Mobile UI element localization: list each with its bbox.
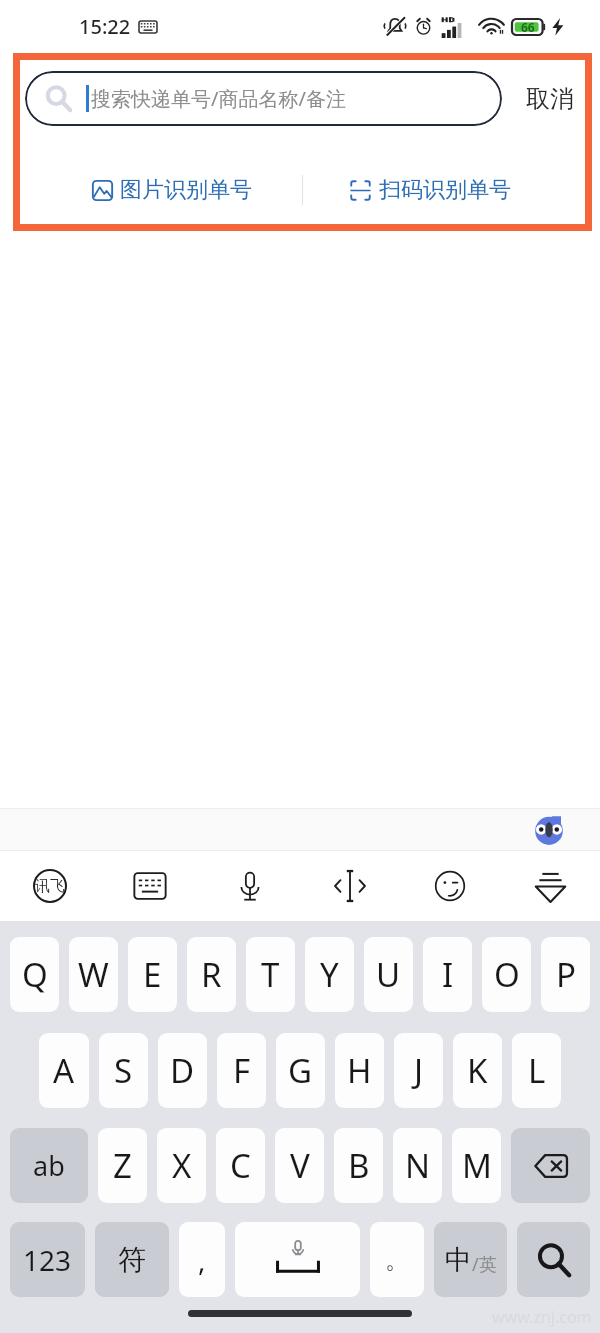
button[interactable]: C bbox=[216, 1128, 265, 1203]
staticText: 。 bbox=[385, 1245, 409, 1275]
staticText: 123 bbox=[23, 1241, 72, 1279]
button[interactable]: I bbox=[423, 937, 472, 1012]
staticText: D bbox=[170, 1048, 195, 1093]
staticText: L bbox=[528, 1048, 546, 1093]
button[interactable]: Q bbox=[10, 937, 59, 1012]
button[interactable]: A bbox=[39, 1033, 89, 1108]
staticText: X bbox=[172, 1143, 192, 1188]
staticText: I bbox=[442, 952, 454, 997]
button[interactable]: X bbox=[157, 1128, 206, 1203]
button[interactable]: R bbox=[187, 937, 236, 1012]
button[interactable]: G bbox=[276, 1033, 325, 1108]
button[interactable]: 符 bbox=[95, 1222, 169, 1297]
staticText: C bbox=[230, 1143, 251, 1188]
staticText: T bbox=[261, 952, 280, 997]
button[interactable]: N bbox=[393, 1128, 442, 1203]
staticText: W bbox=[78, 952, 109, 997]
staticText: 66 bbox=[521, 19, 535, 35]
staticText: Y bbox=[320, 952, 339, 997]
button[interactable]: Search bbox=[517, 1222, 590, 1297]
staticText: www.znj.com bbox=[492, 1306, 592, 1328]
staticText: E bbox=[143, 952, 162, 997]
staticText: G bbox=[288, 1048, 313, 1093]
staticText: F bbox=[233, 1048, 251, 1093]
staticText: 中 bbox=[445, 1243, 472, 1277]
button[interactable]: M bbox=[452, 1128, 501, 1203]
staticText: /英 bbox=[472, 1252, 497, 1277]
button[interactable]: 图片识别单号 bbox=[92, 176, 252, 204]
staticText: U bbox=[376, 952, 401, 997]
button[interactable]: T bbox=[246, 937, 295, 1012]
staticText: 扫码识别单号 bbox=[379, 176, 511, 204]
button[interactable]: O bbox=[482, 937, 531, 1012]
button[interactable]: 取消 bbox=[514, 63, 586, 135]
button[interactable]: Switch language bbox=[434, 1222, 507, 1297]
staticText: A bbox=[53, 1048, 75, 1093]
staticText: S bbox=[114, 1048, 133, 1093]
staticText: 搜索快递单号/商品名称/备注 bbox=[91, 85, 346, 112]
staticText: 符 bbox=[118, 1242, 146, 1277]
button[interactable]: , bbox=[179, 1222, 225, 1297]
staticText: , bbox=[198, 1241, 206, 1279]
staticText: J bbox=[414, 1048, 424, 1093]
button[interactable]: Assistant bbox=[534, 815, 564, 845]
button[interactable]: Space bbox=[235, 1222, 360, 1297]
button[interactable]: Y bbox=[305, 937, 354, 1012]
button[interactable]: V bbox=[275, 1128, 324, 1203]
button[interactable]: Input method bbox=[0, 851, 100, 921]
button[interactable]: U bbox=[364, 937, 413, 1012]
button[interactable]: Keyboard layout bbox=[100, 851, 200, 921]
staticText: B bbox=[348, 1143, 370, 1188]
button[interactable]: F bbox=[217, 1033, 266, 1108]
button[interactable]: Emoji bbox=[400, 851, 500, 921]
button[interactable]: J bbox=[394, 1033, 443, 1108]
button[interactable]: L bbox=[512, 1033, 561, 1108]
staticText: O bbox=[494, 952, 520, 997]
staticText: Q bbox=[22, 952, 48, 997]
button[interactable]: S bbox=[99, 1033, 148, 1108]
button[interactable]: ab bbox=[10, 1128, 88, 1203]
staticText: 15:22 bbox=[79, 13, 131, 40]
staticText: R bbox=[201, 952, 222, 997]
button[interactable]: B bbox=[334, 1128, 383, 1203]
button[interactable]: W bbox=[69, 937, 118, 1012]
button[interactable]: Hide keyboard bbox=[500, 851, 600, 921]
button[interactable]: 搜索快递单号/商品名称/备注 bbox=[25, 71, 502, 126]
staticText: K bbox=[467, 1048, 488, 1093]
button[interactable]: Z bbox=[98, 1128, 147, 1203]
button[interactable]: 123 bbox=[10, 1222, 85, 1297]
staticText: 取消 bbox=[526, 84, 574, 114]
staticText: N bbox=[405, 1143, 431, 1188]
button[interactable]: E bbox=[128, 937, 177, 1012]
staticText: H bbox=[347, 1048, 372, 1093]
button[interactable]: Move cursor bbox=[300, 851, 400, 921]
button[interactable]: P bbox=[541, 937, 590, 1012]
staticText: P bbox=[556, 952, 576, 997]
staticText: Z bbox=[113, 1143, 132, 1188]
staticText: M bbox=[462, 1143, 492, 1188]
staticText: 讯飞 bbox=[35, 877, 65, 896]
button[interactable]: K bbox=[453, 1033, 502, 1108]
button[interactable]: Backspace bbox=[511, 1128, 590, 1203]
staticText: V bbox=[290, 1143, 310, 1188]
button[interactable]: H bbox=[335, 1033, 384, 1108]
button[interactable]: 。 bbox=[370, 1222, 424, 1297]
button[interactable]: Voice input bbox=[200, 851, 300, 921]
button[interactable]: 扫码识别单号 bbox=[350, 176, 511, 204]
staticText: ab bbox=[33, 1147, 65, 1184]
button[interactable]: D bbox=[158, 1033, 207, 1108]
staticText: 图片识别单号 bbox=[120, 176, 252, 204]
